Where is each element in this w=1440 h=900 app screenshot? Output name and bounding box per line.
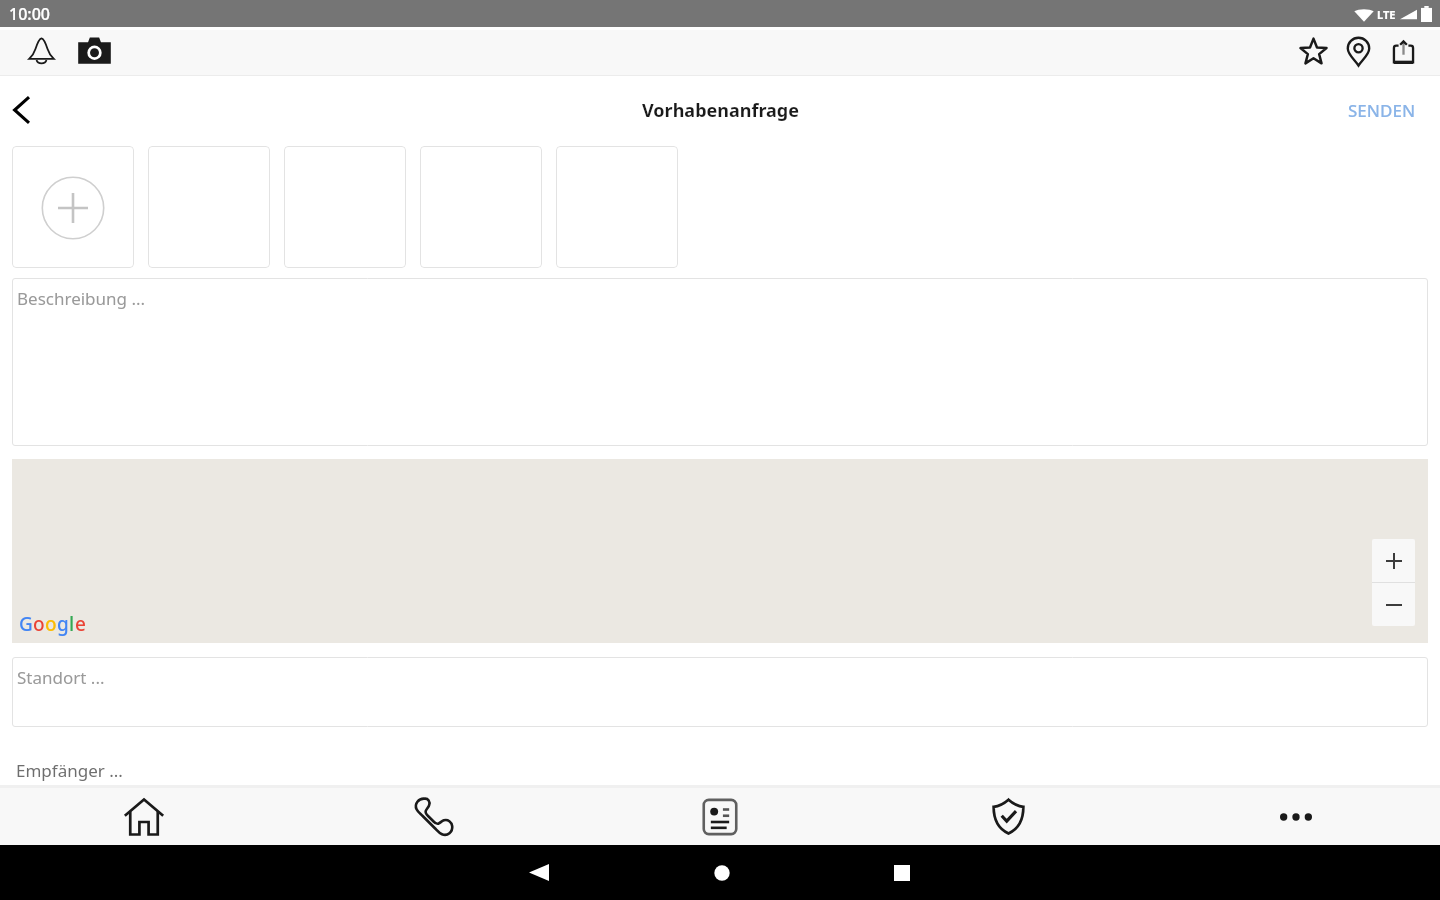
button[interactable]: Favorite (1291, 29, 1336, 74)
button[interactable]: Home (692, 845, 752, 900)
staticText: Vorhabenanfrage (642, 98, 799, 123)
button[interactable]: Camera (69, 27, 119, 76)
staticText: SENDEN (1348, 99, 1416, 122)
staticText: G (19, 611, 33, 637)
button[interactable]: Photo slot 2 (148, 146, 270, 268)
button[interactable]: Home (0, 788, 288, 845)
staticText: e (75, 611, 86, 637)
button[interactable]: Share (1381, 29, 1426, 74)
button[interactable]: Back (509, 845, 569, 900)
button[interactable]: Recents (872, 845, 932, 900)
staticText: g (57, 611, 69, 637)
button[interactable]: Photo slot 5 (556, 146, 678, 268)
button[interactable]: Photo slot 3 (284, 146, 406, 268)
button[interactable]: Empfänger ... (0, 745, 1440, 785)
staticText: o (45, 611, 57, 637)
button[interactable]: Notifications (16, 27, 66, 76)
button[interactable]: Add photo (12, 146, 134, 268)
button[interactable]: Security (864, 788, 1152, 845)
staticText: Empfänger ... (16, 759, 123, 782)
button[interactable]: SENDEN (1348, 99, 1416, 122)
staticText: Beschreibung ... (17, 287, 146, 310)
staticText: l (69, 611, 75, 637)
button[interactable]: Zoom out (1372, 583, 1415, 626)
button[interactable]: Call (288, 788, 576, 845)
button[interactable]: Photo slot 4 (420, 146, 542, 268)
button[interactable]: More (1152, 788, 1440, 845)
button[interactable]: Zoom in (1372, 539, 1415, 582)
staticText: LTE (1377, 7, 1396, 22)
staticText: Standort ... (17, 666, 105, 689)
button[interactable]: Contacts (576, 788, 864, 845)
staticText: 10:00 (9, 3, 50, 25)
button[interactable]: Beschreibung ... (12, 278, 1428, 446)
button[interactable]: Standort ... (12, 657, 1428, 727)
button[interactable]: Back (0, 88, 44, 132)
button[interactable]: Location (1336, 29, 1381, 74)
staticText: o (33, 611, 45, 637)
